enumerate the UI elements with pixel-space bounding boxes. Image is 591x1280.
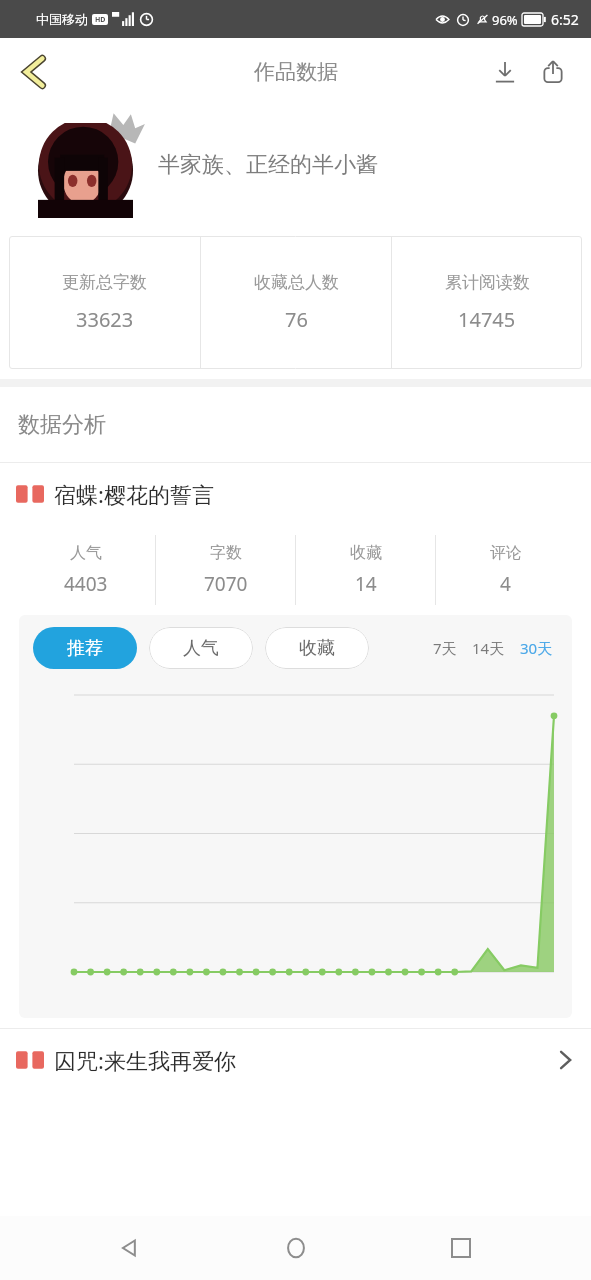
staticText: 人气 [183, 637, 219, 660]
button[interactable]: 字数 [156, 525, 295, 615]
staticText: 评论 [490, 543, 522, 563]
staticText: 7070 [204, 571, 248, 597]
staticText: 30天 [520, 638, 553, 658]
staticText: 字数 [210, 543, 242, 563]
staticText: 76 [285, 306, 308, 333]
button[interactable]: Recents [426, 1216, 496, 1280]
staticText: 4 [500, 571, 511, 597]
staticText: HD [95, 15, 106, 25]
button[interactable]: 更新总字数 [9, 236, 200, 369]
staticText: 人气 [70, 543, 102, 563]
button[interactable]: 收藏 [296, 525, 435, 615]
button[interactable]: 14天 [467, 632, 510, 664]
button[interactable]: Back [6, 44, 62, 100]
staticText: 14 [355, 571, 377, 597]
staticText: 数据分析 [18, 411, 106, 439]
button[interactable]: Download [481, 48, 529, 96]
button[interactable]: 评论 [436, 525, 575, 615]
button[interactable]: Back [95, 1216, 165, 1280]
staticText: 收藏总人数 [254, 272, 339, 293]
button[interactable]: 7天 [428, 632, 462, 664]
staticText: 收藏 [350, 543, 382, 563]
button[interactable]: 推荐 [33, 627, 137, 669]
staticText: 96% [492, 11, 518, 29]
staticText: 作品数据 [254, 59, 338, 85]
button[interactable]: 囚咒:来生我再爱你 [0, 1029, 591, 1091]
button[interactable]: Share [529, 48, 577, 96]
staticText: 33623 [76, 306, 134, 333]
staticText: 6:52 [551, 10, 579, 29]
staticText: 收藏 [299, 637, 335, 660]
staticText: 半家族、正经的半小酱 [158, 151, 378, 179]
button[interactable]: Home [261, 1216, 331, 1280]
button[interactable]: 人气 [16, 525, 155, 615]
staticText: 7天 [433, 638, 457, 658]
staticText: 推荐 [67, 637, 103, 660]
button[interactable]: 累计阅读数 [392, 236, 582, 369]
staticText: 累计阅读数 [445, 272, 530, 293]
staticText: 14天 [472, 638, 505, 658]
button[interactable]: 半家族、正经的半小酱 [0, 106, 591, 224]
button[interactable]: 30天 [515, 632, 558, 664]
button[interactable]: 收藏总人数 [201, 236, 391, 369]
staticText: 4403 [64, 571, 108, 597]
button[interactable]: 收藏 [265, 627, 369, 669]
staticText: 宿蝶:樱花的誓言 [54, 479, 214, 509]
staticText: 更新总字数 [62, 272, 147, 293]
staticText: 中国移动 [36, 11, 88, 27]
button[interactable]: 人气 [149, 627, 253, 669]
staticText: 14745 [458, 306, 516, 333]
staticText: 囚咒:来生我再爱你 [54, 1045, 236, 1075]
button[interactable]: 宿蝶:樱花的誓言 [0, 463, 591, 525]
